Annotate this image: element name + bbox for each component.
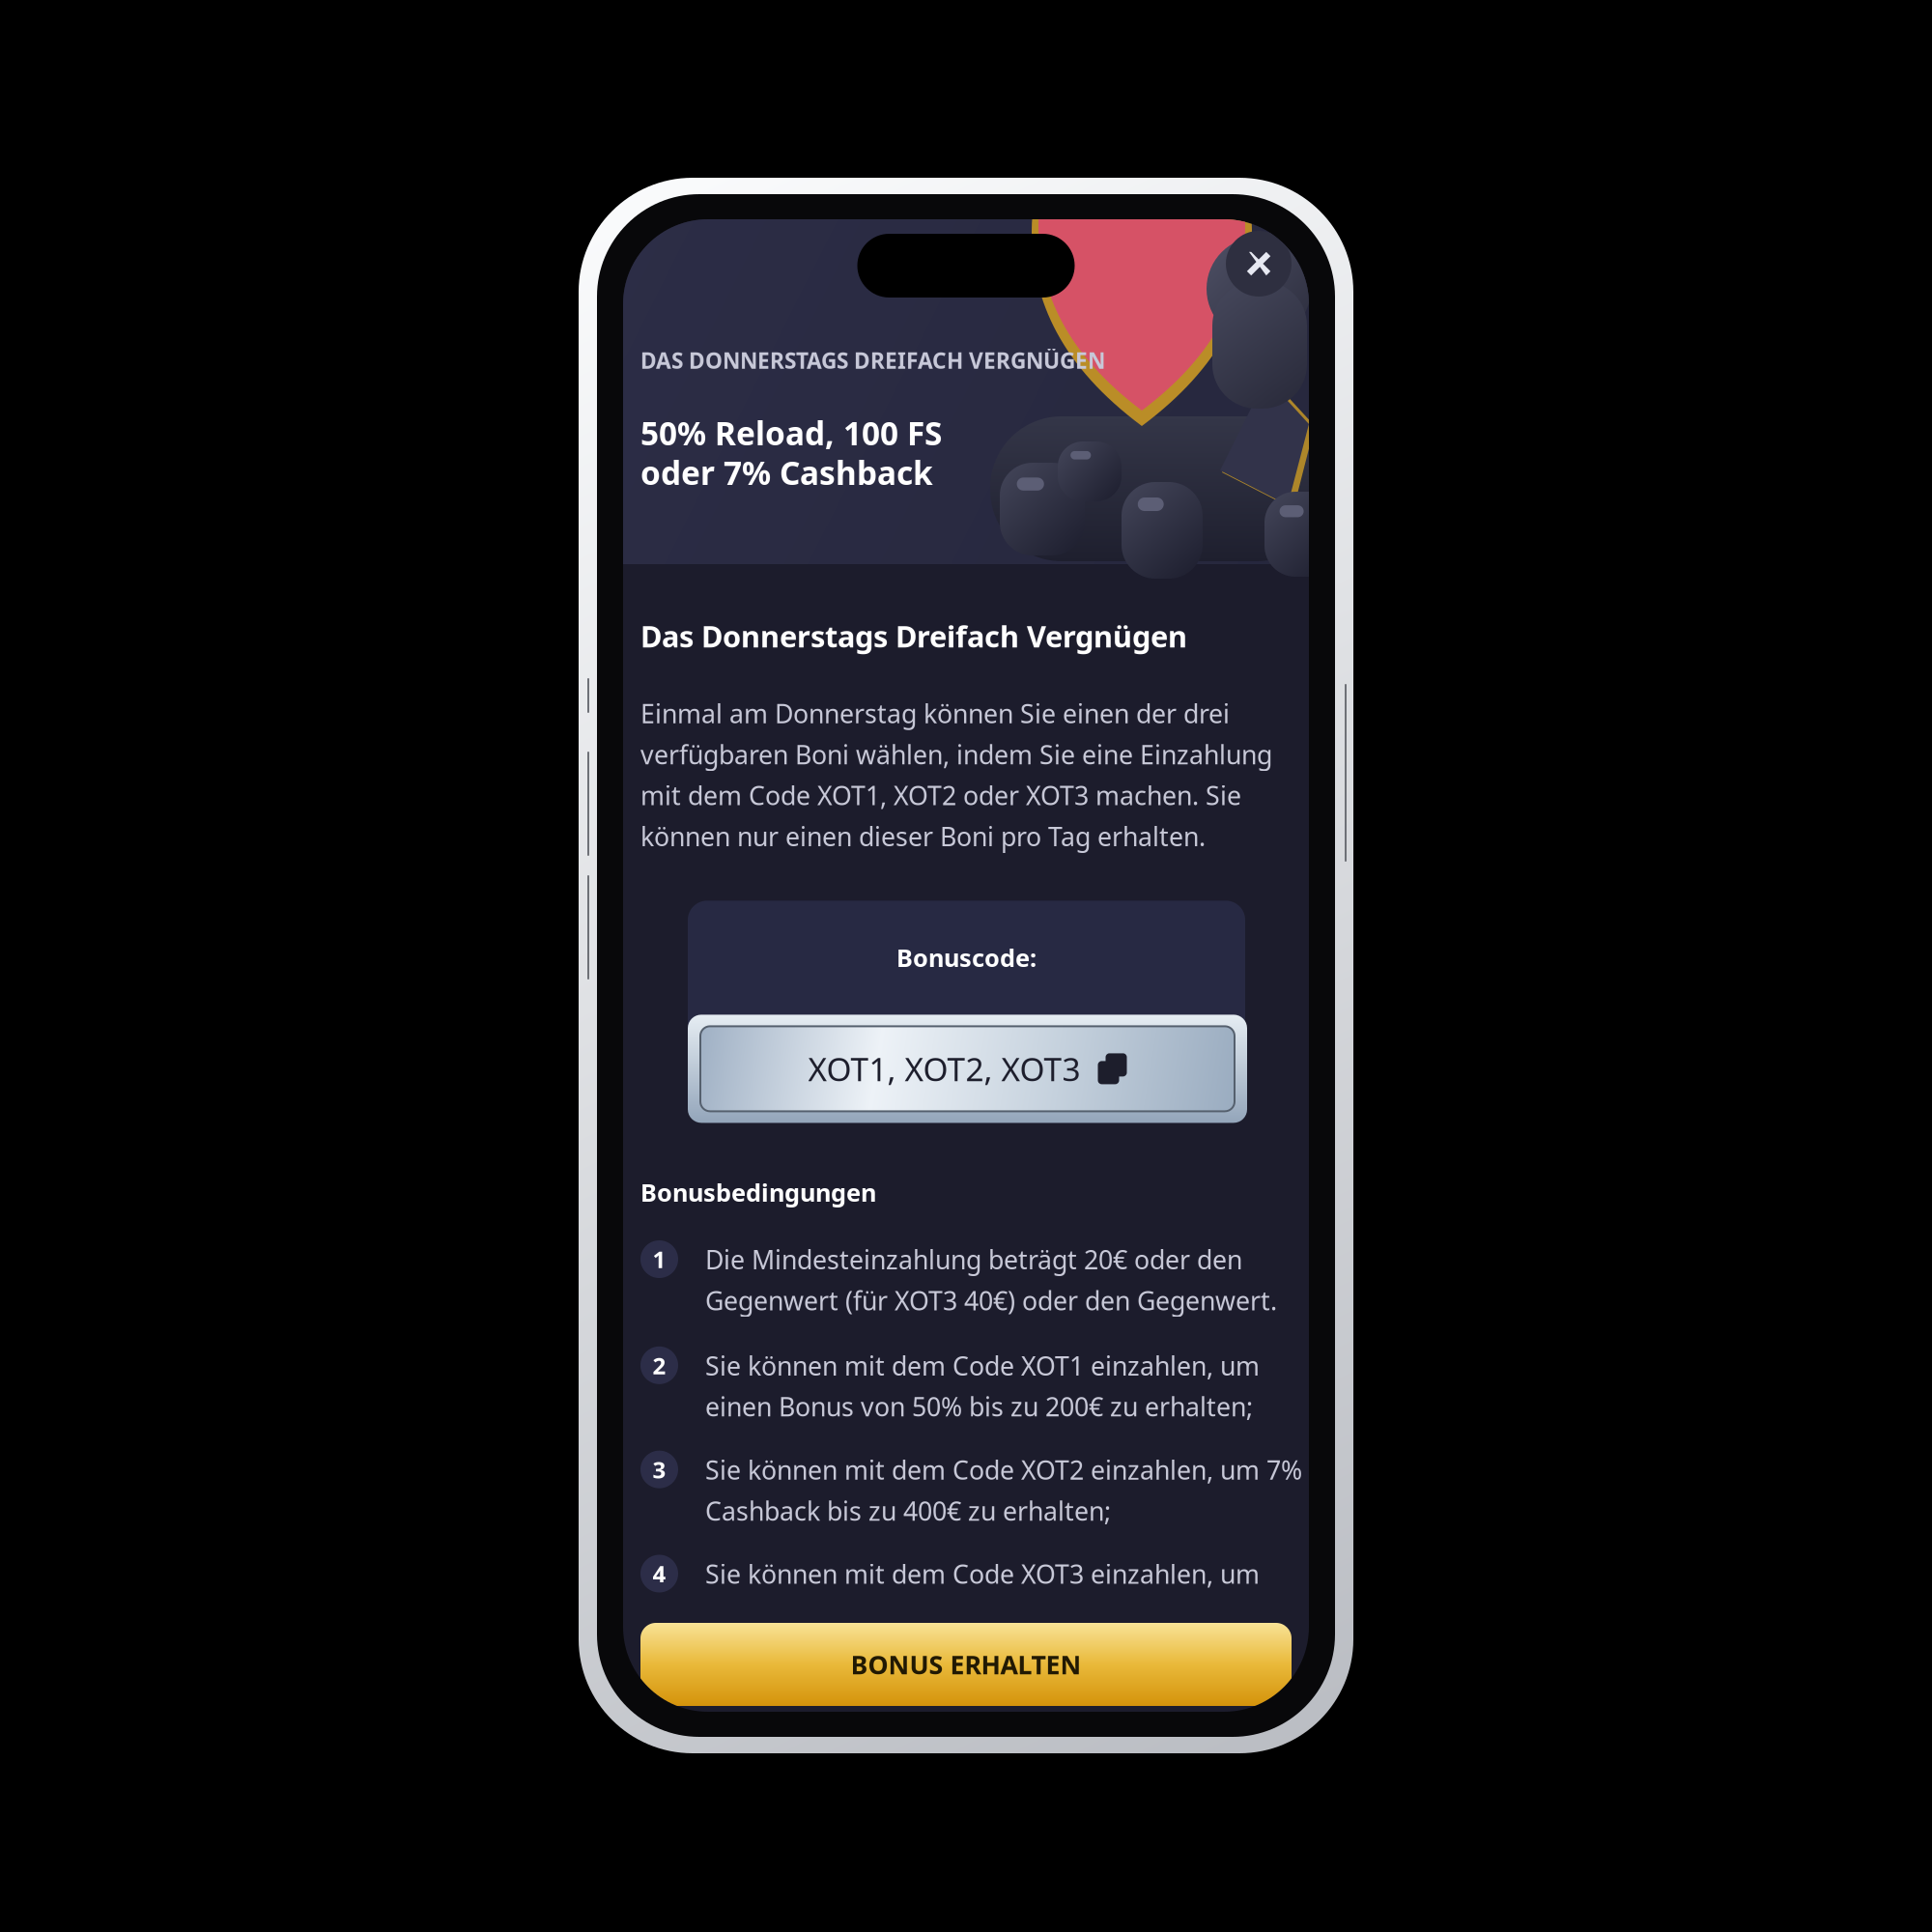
- staticText: 2: [653, 1350, 666, 1381]
- button[interactable]: Close: [1226, 231, 1292, 297]
- staticText: Sie können mit dem Code XOT3 einzahlen, …: [705, 1557, 1260, 1591]
- staticText: DAS DONNERSTAGS DREIFACH VERGNÜGEN: [640, 346, 1105, 375]
- staticText: 4: [653, 1558, 666, 1589]
- staticText: BONUS ERHALTEN: [851, 1647, 1081, 1682]
- staticText: Sie können mit dem Code XOT1 einzahlen, …: [705, 1348, 1260, 1423]
- staticText: Einmal am Donnerstag können Sie einen de…: [640, 696, 1272, 853]
- staticText: 1: [653, 1244, 666, 1275]
- staticText: Die Mindesteinzahlung beträgt 20€ oder d…: [705, 1242, 1277, 1317]
- staticText: oder 7% Cashback: [640, 451, 933, 494]
- button[interactable]: BONUS ERHALTEN: [640, 1623, 1292, 1706]
- staticText: XOT1, XOT2, XOT3: [808, 1047, 1080, 1090]
- staticText: 50% Reload, 100 FS: [640, 412, 942, 454]
- staticText: Sie können mit dem Code XOT2 einzahlen, …: [705, 1453, 1302, 1528]
- button[interactable]: XOT1, XOT2, XOT3: [688, 1015, 1247, 1123]
- staticText: 3: [653, 1454, 666, 1485]
- staticText: Das Donnerstags Dreifach Vergnügen: [640, 616, 1187, 656]
- staticText: Bonuscode:: [896, 941, 1037, 974]
- staticText: Bonusbedingungen: [640, 1176, 876, 1208]
